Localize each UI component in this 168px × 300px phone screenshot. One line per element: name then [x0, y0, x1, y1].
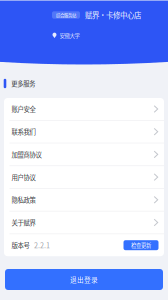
button[interactable]: 账户安全 [4, 98, 164, 120]
staticText: 综合服务站 [56, 12, 76, 18]
button[interactable]: 隐私政策 [4, 189, 164, 211]
button[interactable]: 联系我们 [4, 121, 164, 143]
staticText: 加盟商协议 [11, 150, 41, 159]
staticText: 更多服务 [11, 79, 35, 88]
staticText: 安徽大学 [59, 31, 79, 39]
staticText: 隐私政策 [11, 195, 35, 204]
button[interactable]: 检查更新 [123, 240, 158, 250]
button[interactable]: 关于赋界 [4, 211, 164, 233]
staticText: 检查更新 [131, 241, 151, 249]
staticText: 联系我们 [11, 127, 35, 136]
staticText: 账户安全 [11, 104, 35, 114]
staticText: 关于赋界 [11, 218, 35, 227]
staticText: 赋界·卡修中心店 [85, 10, 141, 20]
button[interactable]: 用户协议 [4, 166, 164, 188]
button[interactable]: 加盟商协议 [4, 143, 164, 165]
staticText: 2.2.1 [34, 240, 50, 250]
staticText: 退出登录 [70, 275, 98, 284]
staticText: 版本号 [11, 241, 29, 250]
staticText: 用户协议 [11, 172, 35, 182]
button[interactable]: 退出登录 [5, 269, 163, 290]
